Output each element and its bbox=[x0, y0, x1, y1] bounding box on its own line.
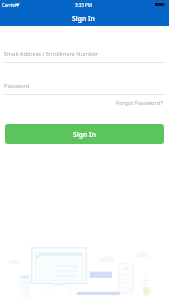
button[interactable]: Sign In bbox=[5, 124, 164, 144]
staticText: Sign In bbox=[72, 14, 95, 23]
staticText: 3:33 PM bbox=[75, 2, 92, 8]
staticText: Forgot Password? bbox=[116, 99, 163, 107]
staticText: Sign In bbox=[73, 130, 96, 139]
staticText: Email Address / Enrollment Number bbox=[4, 50, 99, 58]
staticText: Carrier bbox=[2, 2, 17, 8]
button[interactable]: Forgot Password? bbox=[114, 97, 165, 109]
staticText: Password bbox=[4, 82, 30, 90]
